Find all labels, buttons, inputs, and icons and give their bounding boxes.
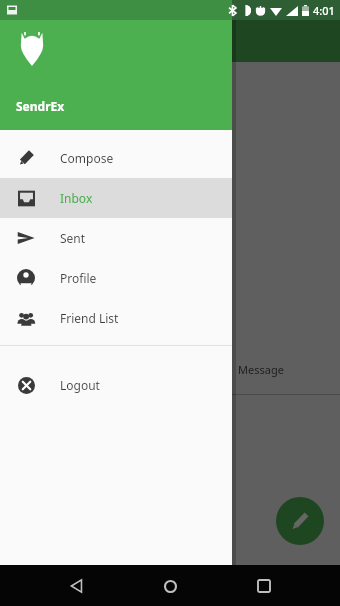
button[interactable]: Home: [153, 569, 187, 603]
button[interactable]: Recent apps: [247, 569, 281, 603]
button[interactable]: Compose: [0, 138, 232, 178]
staticText: Profile: [60, 270, 97, 286]
staticText: Logout: [60, 377, 100, 393]
staticText: SendrEx: [16, 98, 65, 114]
staticText: Message: [238, 362, 284, 377]
button[interactable]: Logout: [0, 365, 232, 405]
button[interactable]: Profile: [0, 258, 232, 298]
staticText: Friend List: [60, 310, 119, 326]
button[interactable]: Compose message: [276, 497, 324, 545]
staticText: Compose: [60, 150, 114, 166]
button[interactable]: SendrEx: [0, 0, 232, 130]
staticText: Sent: [60, 230, 86, 246]
staticText: 4:01: [313, 3, 335, 18]
button[interactable]: Sent: [0, 218, 232, 258]
button[interactable]: Inbox: [0, 178, 232, 218]
button[interactable]: Friend List: [0, 298, 232, 338]
staticText: Inbox: [60, 190, 93, 206]
button[interactable]: Back: [60, 569, 94, 603]
